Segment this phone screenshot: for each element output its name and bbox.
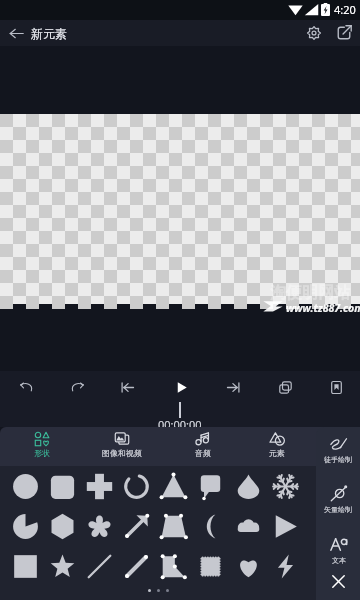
button[interactable]: Shape 10 <box>81 508 117 544</box>
staticText: 00:00:00 <box>158 417 202 432</box>
button[interactable]: Shape 14 <box>230 508 266 544</box>
button[interactable]: Shape 22 <box>230 548 266 584</box>
staticText: 新元素 <box>31 26 67 41</box>
button[interactable]: Shape 13 <box>192 508 228 544</box>
button[interactable]: Loop <box>268 370 302 404</box>
staticText: 矢量绘制 <box>324 505 352 514</box>
staticText: 4:20 <box>334 2 356 17</box>
button[interactable]: Skip to start <box>110 370 144 404</box>
button[interactable]: Shape 1 <box>44 468 80 504</box>
staticText: 淘便明网站 <box>270 283 350 303</box>
staticText: 音频 <box>195 448 211 458</box>
button[interactable]: Shape 8 <box>7 508 43 544</box>
staticText: 图像和视频 <box>102 448 142 458</box>
button[interactable]: Shape 18 <box>81 548 117 584</box>
button[interactable]: Back <box>0 20 32 46</box>
button[interactable]: Shape 15 <box>267 508 303 544</box>
button[interactable]: 音频 <box>169 427 237 466</box>
button[interactable]: Redo <box>60 370 94 404</box>
button[interactable]: Shape 12 <box>155 508 191 544</box>
button[interactable]: Shape 9 <box>44 508 80 544</box>
staticText: 元素 <box>269 448 285 458</box>
button[interactable]: 矢量绘制 <box>316 484 360 530</box>
button[interactable]: Shape 16 <box>7 548 43 584</box>
button[interactable]: Shape 7 <box>267 468 303 504</box>
button[interactable]: 文本 <box>316 535 360 581</box>
button[interactable]: Shape 11 <box>118 508 154 544</box>
button[interactable]: Shape 4 <box>155 468 191 504</box>
button[interactable]: Shape 19 <box>118 548 154 584</box>
button[interactable]: Close <box>324 567 352 595</box>
button[interactable]: 图像和视频 <box>88 427 156 466</box>
button[interactable]: Export <box>330 20 358 46</box>
button[interactable]: Skip to end <box>216 370 250 404</box>
button[interactable]: Shape 20 <box>155 548 191 584</box>
button[interactable]: Shape 6 <box>230 468 266 504</box>
staticText: 文本 <box>332 556 346 565</box>
button[interactable]: Shape 23 <box>267 548 303 584</box>
button[interactable]: Shape 17 <box>44 548 80 584</box>
staticText: 形状 <box>34 448 50 458</box>
button[interactable]: Undo <box>9 370 43 404</box>
staticText: 徒手绘制 <box>324 455 352 464</box>
button[interactable]: Shape 2 <box>81 468 117 504</box>
button[interactable]: Shape 0 <box>7 468 43 504</box>
staticText: www.tz887.com <box>286 301 360 315</box>
button[interactable]: Shape 5 <box>192 468 228 504</box>
button[interactable]: 元素 <box>243 427 311 466</box>
button[interactable]: Play <box>164 370 198 404</box>
button[interactable]: Shape 21 <box>192 548 228 584</box>
button[interactable]: Shape 3 <box>118 468 154 504</box>
button[interactable]: Settings <box>300 20 328 46</box>
button[interactable]: Bookmark <box>319 370 353 404</box>
button[interactable]: 徒手绘制 <box>316 434 360 480</box>
button[interactable]: 形状 <box>8 427 76 466</box>
